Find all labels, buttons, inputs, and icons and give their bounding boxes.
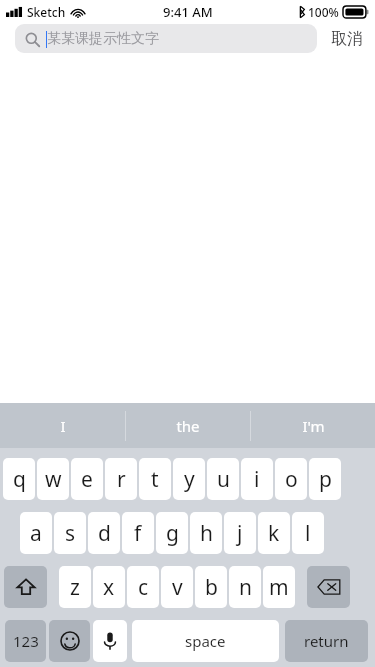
staticText: n	[239, 573, 252, 602]
button[interactable]: return	[285, 620, 368, 662]
button[interactable]: u	[207, 458, 239, 500]
staticText: f	[134, 519, 142, 548]
staticText: t	[151, 465, 159, 494]
button[interactable]: v	[161, 566, 193, 608]
button[interactable]: Emoji	[49, 620, 90, 662]
button[interactable]: h	[190, 512, 222, 554]
staticText: r	[117, 465, 126, 494]
button[interactable]: x	[93, 566, 125, 608]
button[interactable]: j	[224, 512, 256, 554]
button[interactable]: i	[241, 458, 273, 500]
button[interactable]: r	[105, 458, 137, 500]
button[interactable]: z	[59, 566, 91, 608]
staticText: space	[185, 631, 226, 651]
staticText: u	[217, 465, 230, 494]
staticText: k	[268, 519, 280, 548]
staticText: b	[205, 573, 218, 602]
staticText: 某某课提示性文字	[47, 30, 159, 48]
button[interactable]: k	[258, 512, 290, 554]
button[interactable]: l	[292, 512, 324, 554]
staticText: 123	[13, 631, 39, 651]
button[interactable]: I'm	[251, 403, 375, 448]
staticText: the	[176, 416, 200, 436]
button[interactable]: y	[173, 458, 205, 500]
staticText: j	[237, 519, 243, 548]
button[interactable]: b	[195, 566, 227, 608]
button[interactable]: o	[275, 458, 307, 500]
staticText: a	[30, 519, 42, 548]
staticText: z	[70, 573, 80, 602]
staticText: w	[45, 465, 62, 494]
staticText: h	[200, 519, 213, 548]
staticText: d	[98, 519, 111, 548]
staticText: v	[172, 573, 183, 602]
button[interactable]: w	[37, 458, 69, 500]
button[interactable]: Dictation	[93, 620, 127, 662]
button[interactable]: n	[229, 566, 261, 608]
staticText: I'm	[302, 416, 325, 436]
staticText: 9:41 AM	[163, 3, 213, 21]
button[interactable]: 123	[5, 620, 46, 662]
button[interactable]: f	[122, 512, 154, 554]
button[interactable]: the	[126, 403, 250, 448]
staticText: Sketch	[27, 4, 66, 20]
staticText: p	[319, 465, 332, 494]
staticText: i	[254, 465, 260, 494]
button[interactable]: 取消	[331, 29, 363, 49]
staticText: o	[285, 465, 298, 494]
button[interactable]: t	[139, 458, 171, 500]
button[interactable]: space	[132, 620, 279, 662]
staticText: 100%	[308, 4, 339, 20]
staticText: s	[65, 519, 76, 548]
button[interactable]: a	[20, 512, 52, 554]
button[interactable]: Backspace	[307, 566, 350, 608]
button[interactable]: q	[3, 458, 35, 500]
button[interactable]: I	[0, 403, 125, 448]
staticText: l	[305, 519, 311, 548]
staticText: y	[184, 465, 195, 494]
button[interactable]: e	[71, 458, 103, 500]
button[interactable]: Shift	[4, 566, 47, 608]
button[interactable]: d	[88, 512, 120, 554]
staticText: q	[13, 465, 26, 494]
button[interactable]: s	[54, 512, 86, 554]
button[interactable]: 某某课提示性文字	[15, 24, 317, 53]
staticText: x	[103, 573, 115, 602]
staticText: 取消	[331, 29, 363, 49]
staticText: m	[269, 573, 289, 602]
staticText: I	[60, 416, 66, 436]
staticText: e	[81, 465, 93, 494]
button[interactable]: m	[263, 566, 295, 608]
staticText: return	[304, 631, 349, 651]
staticText: c	[138, 573, 149, 602]
staticText: g	[166, 519, 179, 548]
button[interactable]: p	[309, 458, 341, 500]
button[interactable]: c	[127, 566, 159, 608]
button[interactable]: g	[156, 512, 188, 554]
